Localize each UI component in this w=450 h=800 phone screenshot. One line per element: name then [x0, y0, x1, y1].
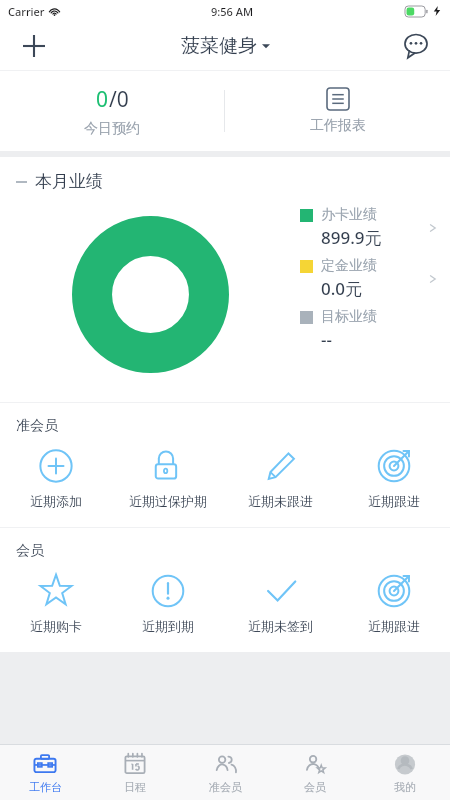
button[interactable]: 日程: [90, 745, 180, 800]
button[interactable]: 近期未跟进: [224, 447, 337, 511]
staticText: 菠菜健身: [181, 34, 257, 58]
button[interactable]: Add: [12, 24, 56, 68]
staticText: 899.9元: [321, 226, 382, 249]
staticText: 近期过保护期: [129, 493, 207, 509]
staticText: 近期添加: [30, 493, 82, 509]
button[interactable]: 目标业绩: [300, 306, 450, 353]
button[interactable]: 办卡业绩: [300, 204, 450, 251]
staticText: --: [321, 328, 332, 351]
staticText: 本月业绩: [35, 171, 103, 192]
staticText: 准会员: [209, 780, 242, 794]
button[interactable]: Messages: [394, 24, 438, 68]
staticText: 近期未签到: [248, 618, 313, 634]
button[interactable]: 工作报表: [225, 71, 450, 151]
staticText: 今日预约: [84, 120, 140, 138]
staticText: 近期跟进: [368, 618, 420, 634]
button[interactable]: 近期到期: [112, 572, 224, 636]
button[interactable]: 会员: [270, 745, 360, 800]
staticText: 0: [96, 85, 109, 114]
staticText: 工作报表: [310, 117, 366, 135]
button[interactable]: 近期跟进: [337, 572, 450, 636]
staticText: 近期跟进: [368, 493, 420, 509]
button[interactable]: 菠菜健身: [181, 34, 270, 58]
staticText: 日程: [124, 780, 146, 794]
button[interactable]: 定金业绩: [300, 255, 450, 302]
button[interactable]: 我的: [360, 745, 450, 800]
staticText: 目标业绩: [321, 308, 377, 326]
button[interactable]: 工作台: [0, 745, 90, 800]
staticText: 准会员: [16, 417, 58, 435]
staticText: 0.0元: [321, 277, 363, 300]
button[interactable]: 近期购卡: [0, 572, 112, 636]
staticText: 定金业绩: [321, 257, 377, 275]
button[interactable]: 近期添加: [0, 447, 112, 511]
staticText: 工作台: [29, 780, 62, 794]
staticText: Carrier: [8, 4, 45, 19]
staticText: 近期到期: [142, 618, 194, 634]
staticText: 9:56 AM: [211, 4, 254, 19]
staticText: 我的: [394, 780, 416, 794]
staticText: /0: [109, 85, 129, 114]
staticText: 近期未跟进: [248, 493, 313, 509]
staticText: 会员: [304, 780, 326, 794]
button[interactable]: 准会员: [180, 745, 270, 800]
staticText: 近期购卡: [30, 618, 82, 634]
button[interactable]: 近期未签到: [224, 572, 337, 636]
staticText: 办卡业绩: [321, 206, 377, 224]
button[interactable]: 0: [0, 71, 224, 151]
staticText: 会员: [16, 542, 44, 560]
button[interactable]: 近期跟进: [337, 447, 450, 511]
button[interactable]: 近期过保护期: [112, 447, 224, 511]
